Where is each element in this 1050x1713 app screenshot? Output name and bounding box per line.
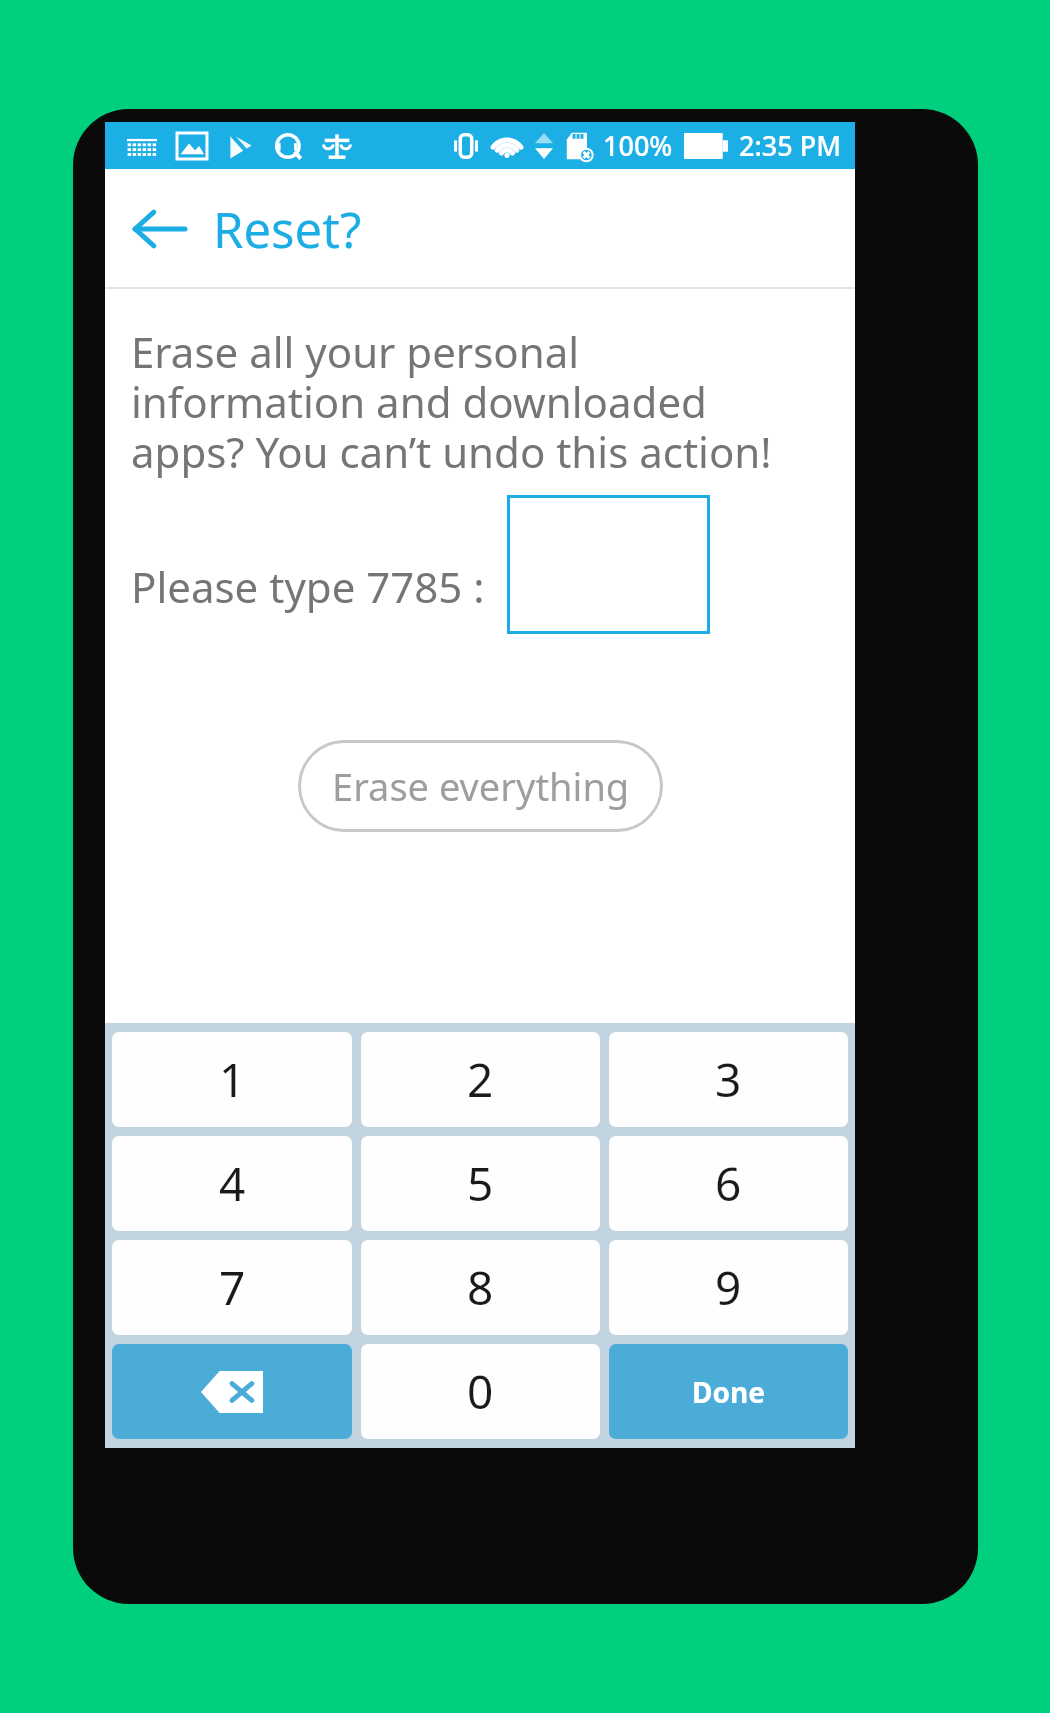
staticText: Erase all your personal information and … xyxy=(131,323,785,481)
button[interactable]: Back xyxy=(127,197,191,261)
button[interactable]: 9 xyxy=(609,1240,848,1335)
staticText: 3 xyxy=(715,1048,742,1111)
staticText: Reset? xyxy=(213,196,362,263)
staticText: 7 xyxy=(219,1256,246,1319)
staticText: 4 xyxy=(219,1152,246,1215)
staticText: 8 xyxy=(467,1256,494,1319)
staticText: 5 xyxy=(467,1152,494,1215)
staticText: Erase everything xyxy=(332,760,630,812)
button[interactable]: 5 xyxy=(361,1136,600,1231)
button[interactable]: 6 xyxy=(609,1136,848,1231)
staticText: 0 xyxy=(467,1360,494,1423)
button[interactable]: Erase everything xyxy=(298,740,663,832)
button[interactable]: Done xyxy=(609,1344,848,1439)
staticText: 2:35 PM xyxy=(739,127,841,164)
staticText: 100% xyxy=(603,127,673,164)
button[interactable]: 3 xyxy=(609,1032,848,1127)
staticText: 2 xyxy=(467,1048,494,1111)
button[interactable]: 4 xyxy=(112,1136,352,1231)
button[interactable]: 8 xyxy=(361,1240,600,1335)
button[interactable]: 0 xyxy=(361,1344,600,1439)
staticText: 1 xyxy=(219,1048,246,1111)
staticText: 9 xyxy=(715,1256,742,1319)
button[interactable]: Backspace xyxy=(112,1344,352,1439)
button[interactable] xyxy=(507,495,710,634)
button[interactable]: 2 xyxy=(361,1032,600,1127)
staticText: Done xyxy=(692,1373,765,1411)
staticText: 6 xyxy=(715,1152,742,1215)
button[interactable]: 7 xyxy=(112,1240,352,1335)
button[interactable]: 1 xyxy=(112,1032,352,1127)
staticText: Please type 7785 : xyxy=(131,558,485,615)
